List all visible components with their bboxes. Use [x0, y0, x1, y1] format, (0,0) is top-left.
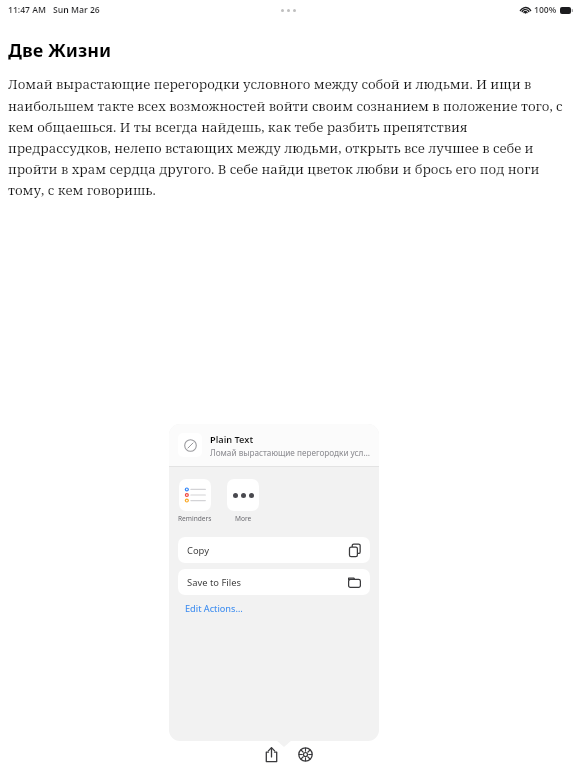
- button[interactable]: Plain Text: [169, 424, 379, 466]
- staticText: Reminders: [178, 514, 212, 523]
- staticText: 11:47 AM: [8, 4, 47, 16]
- staticText: Save to Files: [187, 576, 348, 589]
- button[interactable]: Edit Actions…: [169, 595, 379, 621]
- staticText: Ломай вырастающие перегородки условн…: [210, 447, 370, 458]
- button[interactable]: Share: [260, 743, 282, 765]
- button[interactable]: More: [226, 479, 260, 523]
- button[interactable]: Save to Files: [178, 569, 370, 595]
- staticText: Copy: [187, 544, 349, 557]
- staticText: 100%: [534, 4, 557, 16]
- staticText: Ломай вырастающие перегородки условного …: [8, 75, 566, 199]
- button[interactable]: Reminders: [178, 479, 212, 523]
- staticText: More: [235, 514, 252, 523]
- button[interactable]: Copy: [178, 537, 370, 563]
- staticText: Plain Text: [210, 433, 254, 446]
- button[interactable]: Settings: [294, 743, 316, 765]
- staticText: Sun Mar 26: [53, 4, 100, 16]
- staticText: Две Жизни: [8, 38, 112, 63]
- staticText: Edit Actions…: [185, 602, 243, 615]
